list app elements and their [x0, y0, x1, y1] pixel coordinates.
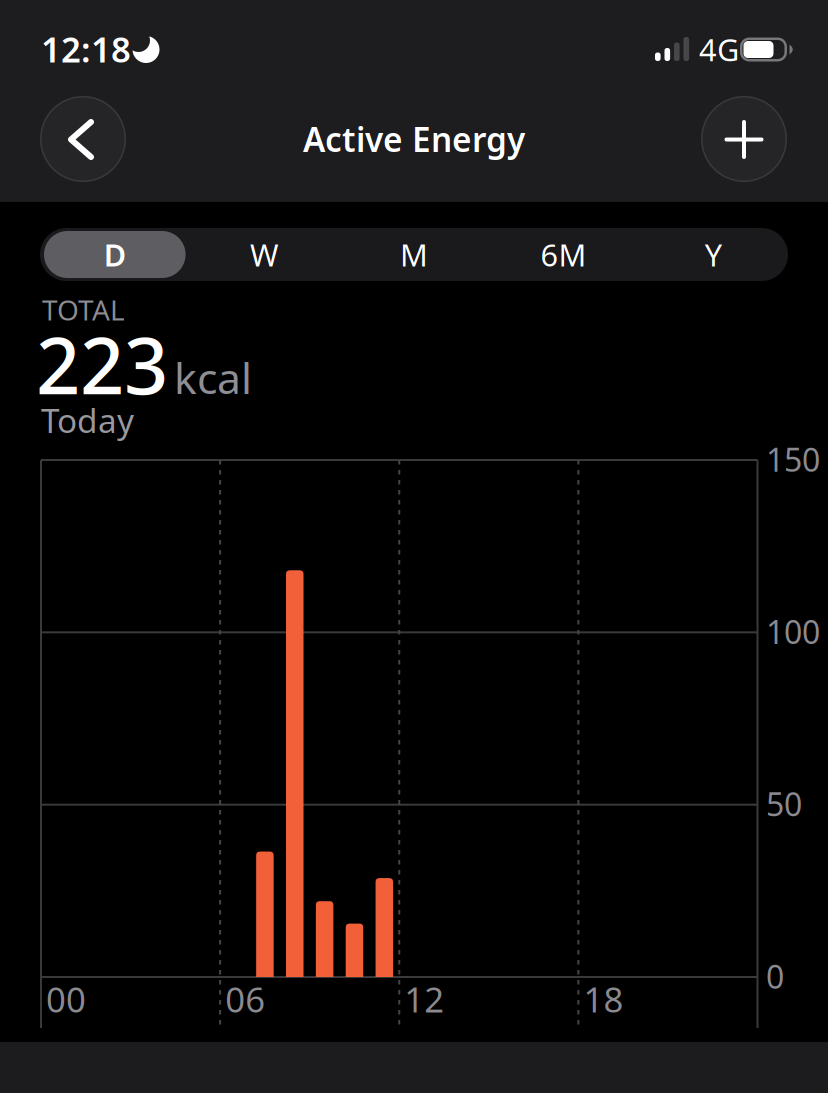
staticText: 4G [699, 29, 739, 70]
staticText: kcal [174, 349, 252, 406]
button[interactable]: Y [638, 228, 788, 281]
staticText: Today [41, 398, 134, 442]
button[interactable]: Back [40, 96, 126, 182]
staticText: 50 [766, 783, 802, 825]
staticText: 00 [46, 976, 86, 1022]
staticText: 12:18 [41, 26, 131, 72]
staticText: W [250, 234, 279, 275]
staticText: M [400, 234, 428, 275]
staticText: 18 [583, 976, 623, 1022]
staticText: D [104, 234, 126, 275]
staticText: Y [705, 234, 722, 275]
staticText: 0 [766, 955, 784, 997]
staticText: 12 [404, 976, 444, 1022]
staticText: Active Energy [303, 117, 525, 161]
staticText: 223 [36, 313, 168, 416]
staticText: 150 [766, 438, 820, 480]
staticText: 06 [225, 976, 265, 1022]
staticText: 100 [766, 610, 820, 653]
staticText: TOTAL [42, 291, 125, 328]
staticText: 6M [541, 234, 587, 275]
button[interactable]: W [190, 228, 339, 281]
button[interactable]: D [40, 228, 190, 281]
button[interactable]: M [339, 228, 489, 281]
button[interactable]: 6M [489, 228, 638, 281]
button[interactable]: Add data [701, 96, 787, 182]
